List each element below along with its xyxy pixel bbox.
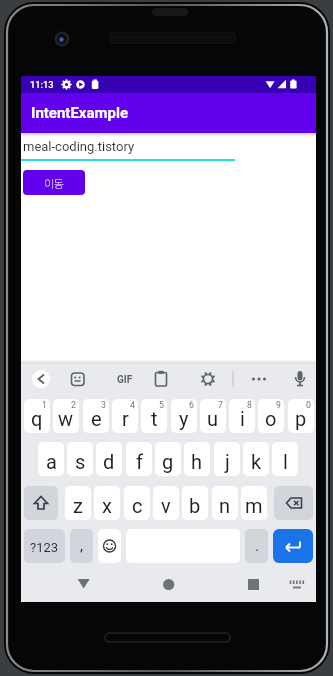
button[interactable]: . bbox=[245, 529, 268, 563]
button[interactable]: x bbox=[94, 486, 120, 520]
button[interactable]: g bbox=[155, 442, 181, 476]
staticText: a bbox=[46, 450, 57, 473]
staticText: 이동 bbox=[44, 175, 65, 191]
button[interactable]: a bbox=[38, 442, 64, 476]
staticText: x bbox=[102, 494, 112, 517]
button[interactable]: e bbox=[83, 399, 109, 433]
button[interactable]: GIF bbox=[113, 373, 137, 386]
staticText: p bbox=[295, 407, 307, 430]
button[interactable]: o bbox=[258, 399, 284, 433]
button[interactable]: k bbox=[243, 442, 269, 476]
button[interactable]: , bbox=[70, 529, 93, 563]
button[interactable] bbox=[32, 370, 50, 388]
staticText: s bbox=[75, 450, 86, 473]
button[interactable] bbox=[285, 569, 311, 594]
button[interactable]: 이동 bbox=[23, 170, 85, 195]
staticText: meal-coding.tistory bbox=[23, 139, 135, 154]
button[interactable] bbox=[68, 569, 98, 594]
button[interactable]: m bbox=[241, 486, 267, 520]
staticText: h bbox=[191, 450, 203, 473]
staticText: i bbox=[240, 407, 245, 430]
button[interactable]: z bbox=[65, 486, 91, 520]
staticText: , bbox=[80, 537, 83, 555]
button[interactable] bbox=[247, 369, 271, 389]
button[interactable]: w bbox=[53, 399, 79, 433]
button[interactable]: c bbox=[124, 486, 150, 520]
staticText: 11:13 bbox=[30, 79, 54, 90]
button[interactable]: b bbox=[182, 486, 208, 520]
button[interactable] bbox=[290, 369, 310, 389]
staticText: 0 bbox=[306, 400, 311, 410]
staticText: e bbox=[91, 407, 102, 430]
staticText: z bbox=[73, 494, 83, 517]
staticText: IntentExample bbox=[31, 104, 129, 122]
button[interactable]: meal-coding.tistory bbox=[21, 137, 235, 161]
button[interactable]: p bbox=[288, 399, 314, 433]
staticText: u bbox=[207, 407, 219, 430]
staticText: v bbox=[161, 494, 171, 517]
button[interactable] bbox=[273, 529, 313, 563]
button[interactable] bbox=[154, 569, 184, 594]
button[interactable]: q bbox=[24, 399, 50, 433]
staticText: n bbox=[219, 494, 231, 517]
staticText: m bbox=[245, 494, 263, 517]
button[interactable] bbox=[98, 529, 121, 563]
button[interactable] bbox=[274, 486, 313, 520]
staticText: b bbox=[189, 494, 201, 517]
button[interactable] bbox=[151, 369, 171, 389]
button[interactable]: r bbox=[112, 399, 138, 433]
staticText: 7 bbox=[218, 400, 223, 410]
staticText: t bbox=[151, 407, 158, 430]
button[interactable]: v bbox=[153, 486, 179, 520]
button[interactable]: t bbox=[141, 399, 167, 433]
button[interactable] bbox=[198, 369, 218, 389]
button[interactable]: h bbox=[184, 442, 210, 476]
staticText: 5 bbox=[159, 400, 164, 410]
staticText: l bbox=[283, 450, 288, 473]
staticText: q bbox=[31, 407, 43, 430]
staticText: y bbox=[179, 407, 189, 430]
button[interactable]: j bbox=[214, 442, 240, 476]
button[interactable]: l bbox=[272, 442, 298, 476]
button[interactable] bbox=[238, 569, 268, 594]
button[interactable]: i bbox=[229, 399, 255, 433]
staticText: g bbox=[162, 450, 174, 473]
staticText: d bbox=[103, 450, 115, 473]
staticText: 9 bbox=[276, 400, 281, 410]
button[interactable]: y bbox=[171, 399, 197, 433]
staticText: ?123 bbox=[30, 540, 59, 555]
button[interactable] bbox=[24, 486, 58, 520]
button[interactable]: u bbox=[200, 399, 226, 433]
staticText: 2 bbox=[71, 400, 76, 410]
staticText: f bbox=[136, 450, 143, 473]
staticText: w bbox=[58, 407, 74, 430]
staticText: 3 bbox=[101, 400, 106, 410]
button[interactable]: s bbox=[67, 442, 93, 476]
button[interactable]: ?123 bbox=[24, 529, 65, 563]
button[interactable]: d bbox=[96, 442, 122, 476]
staticText: c bbox=[132, 494, 143, 517]
staticText: 8 bbox=[247, 400, 252, 410]
staticText: . bbox=[255, 537, 259, 555]
staticText: o bbox=[265, 407, 277, 430]
button[interactable]: f bbox=[126, 442, 152, 476]
button[interactable] bbox=[67, 369, 87, 389]
button[interactable]: n bbox=[212, 486, 238, 520]
staticText: k bbox=[251, 450, 262, 473]
staticText: r bbox=[122, 407, 129, 430]
staticText: GIF bbox=[117, 374, 133, 386]
staticText: 1 bbox=[42, 400, 47, 410]
staticText: 4 bbox=[130, 400, 135, 410]
staticText: j bbox=[225, 450, 230, 473]
staticText: 6 bbox=[189, 400, 194, 410]
